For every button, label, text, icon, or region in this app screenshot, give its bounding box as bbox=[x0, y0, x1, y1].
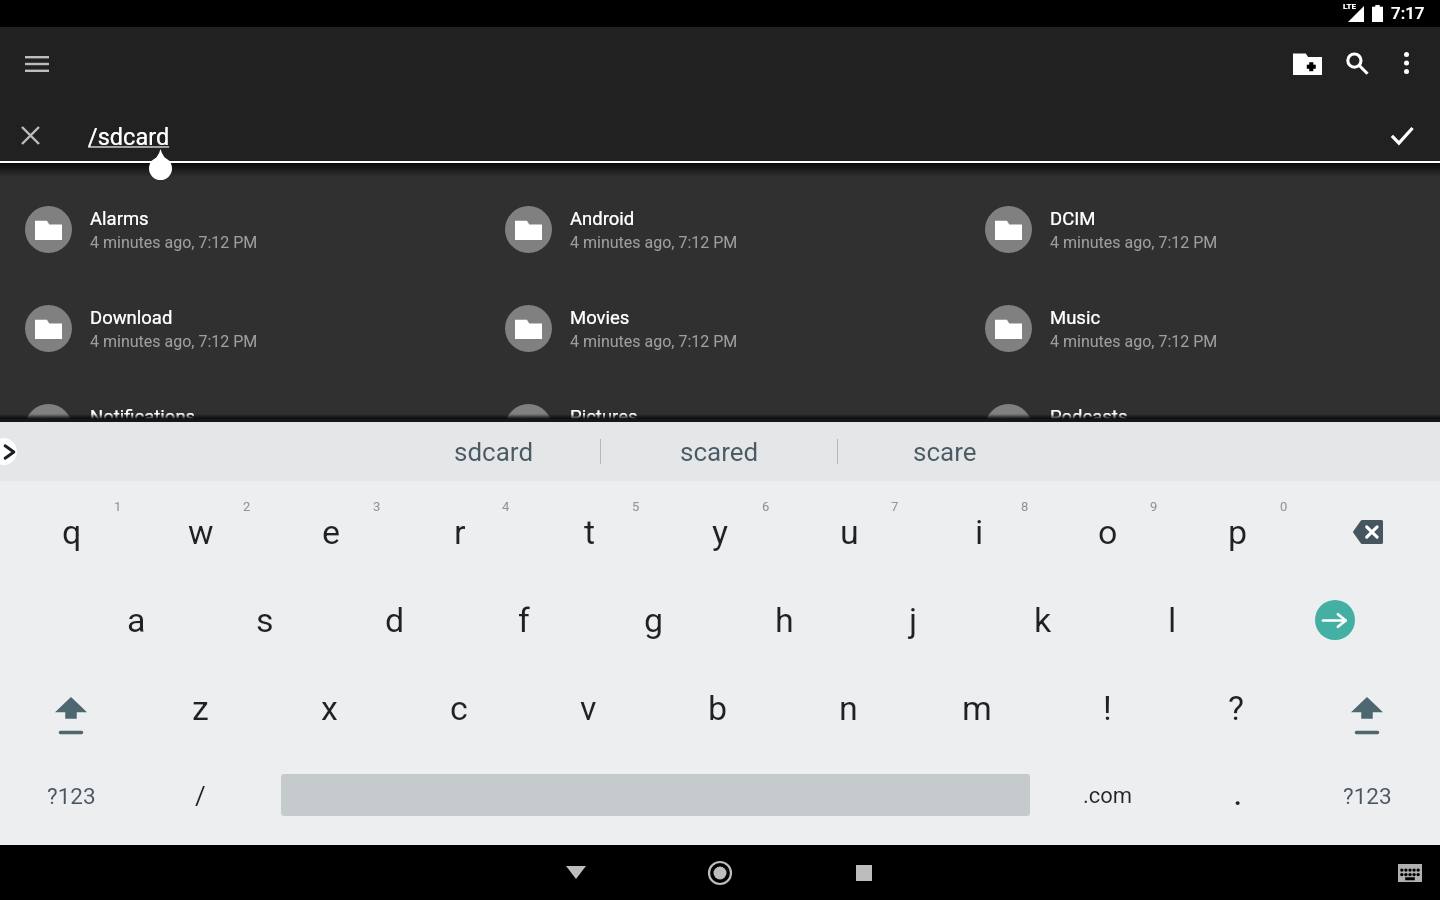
button[interactable]: Enter bbox=[1291, 576, 1379, 664]
button[interactable]: Music bbox=[960, 279, 1440, 378]
button[interactable]: Home bbox=[683, 845, 757, 900]
button[interactable]: ? bbox=[1176, 664, 1296, 752]
button[interactable]: j bbox=[853, 576, 973, 664]
button[interactable]: New folder bbox=[1282, 39, 1332, 87]
button[interactable]: Podcasts bbox=[960, 378, 1440, 419]
staticText: b bbox=[708, 688, 728, 728]
button[interactable]: Navigation menu bbox=[13, 40, 61, 88]
button[interactable]: y bbox=[660, 488, 780, 576]
staticText: Download bbox=[90, 307, 173, 329]
button[interactable]: Android bbox=[480, 180, 960, 279]
staticText: Music bbox=[1050, 307, 1101, 329]
staticText: /sdcard bbox=[88, 123, 170, 151]
button[interactable]: b bbox=[658, 664, 778, 752]
button[interactable]: More options bbox=[1382, 39, 1430, 87]
button[interactable]: scared bbox=[601, 422, 837, 481]
button[interactable]: ?123 bbox=[16, 752, 126, 840]
button[interactable]: g bbox=[594, 576, 714, 664]
button[interactable]: Notifications bbox=[0, 378, 480, 419]
button[interactable]: Backspace bbox=[1313, 488, 1423, 576]
button[interactable]: Change keyboard bbox=[1386, 849, 1434, 897]
button[interactable]: k bbox=[983, 576, 1103, 664]
button[interactable]: .com bbox=[1053, 752, 1163, 840]
button[interactable]: u bbox=[789, 488, 909, 576]
staticText: q bbox=[62, 512, 82, 552]
button[interactable]: Recent apps bbox=[827, 845, 901, 900]
button[interactable]: ! bbox=[1047, 664, 1167, 752]
staticText: 4 minutes ago, 7:12 PM bbox=[90, 233, 258, 252]
button[interactable]: . bbox=[1183, 752, 1293, 840]
staticText: k bbox=[1034, 600, 1052, 640]
staticText: DCIM bbox=[1050, 208, 1096, 230]
button[interactable]: Show more suggestions bbox=[0, 438, 17, 465]
button[interactable]: o bbox=[1048, 488, 1168, 576]
button[interactable]: Shift bbox=[16, 671, 126, 759]
staticText: e bbox=[322, 512, 341, 552]
button[interactable]: f bbox=[464, 576, 584, 664]
staticText: 4 minutes ago, 7:12 PM bbox=[90, 332, 258, 351]
button[interactable]: n bbox=[788, 664, 908, 752]
button[interactable]: sdcard bbox=[388, 422, 600, 481]
staticText: 9 bbox=[1150, 499, 1158, 514]
staticText: Pictures bbox=[570, 406, 638, 419]
button[interactable]: i bbox=[919, 488, 1039, 576]
staticText: s bbox=[256, 600, 274, 640]
button[interactable]: / bbox=[145, 752, 255, 840]
button[interactable]: v bbox=[528, 664, 648, 752]
button[interactable]: scare bbox=[838, 422, 1051, 481]
staticText: w bbox=[188, 512, 214, 552]
staticText: j bbox=[909, 600, 918, 640]
staticText: 4 minutes ago, 7:12 PM bbox=[1050, 332, 1218, 351]
button[interactable]: s bbox=[205, 576, 325, 664]
button[interactable]: x bbox=[269, 664, 389, 752]
button[interactable]: DCIM bbox=[960, 180, 1440, 279]
button[interactable]: e bbox=[271, 488, 391, 576]
button[interactable]: ?123 bbox=[1312, 752, 1422, 840]
button[interactable]: a bbox=[76, 576, 196, 664]
staticText: scare bbox=[913, 437, 977, 467]
staticText: 0 bbox=[1280, 499, 1288, 514]
staticText: 4 minutes ago, 7:12 PM bbox=[570, 332, 738, 351]
button[interactable]: Confirm bbox=[1378, 111, 1426, 159]
staticText: h bbox=[775, 600, 794, 640]
button[interactable]: l bbox=[1112, 576, 1232, 664]
staticText: 2 bbox=[243, 499, 251, 514]
button[interactable]: Alarms bbox=[0, 180, 480, 279]
button[interactable]: w bbox=[141, 488, 261, 576]
staticText: Notifications bbox=[90, 406, 196, 419]
staticText: scared bbox=[680, 437, 759, 467]
staticText: a bbox=[127, 600, 146, 640]
button[interactable]: c bbox=[399, 664, 519, 752]
button[interactable]: Movies bbox=[480, 279, 960, 378]
button[interactable]: Shift bbox=[1312, 671, 1422, 759]
button[interactable]: Pictures bbox=[480, 378, 960, 419]
staticText: 7 bbox=[891, 499, 899, 514]
button[interactable]: Back bbox=[539, 845, 613, 900]
staticText: ! bbox=[1103, 688, 1112, 728]
staticText: z bbox=[192, 688, 209, 728]
button[interactable]: m bbox=[917, 664, 1037, 752]
button[interactable]: r bbox=[400, 488, 520, 576]
staticText: v bbox=[580, 688, 597, 728]
staticText: 4 minutes ago, 7:12 PM bbox=[1050, 233, 1218, 252]
button[interactable]: d bbox=[335, 576, 455, 664]
staticText: p bbox=[1228, 512, 1248, 552]
staticText: o bbox=[1098, 512, 1118, 552]
button[interactable]: q bbox=[12, 488, 132, 576]
button[interactable]: z bbox=[140, 664, 260, 752]
button[interactable]: Close bbox=[6, 111, 54, 159]
staticText: d bbox=[385, 600, 405, 640]
staticText: LTE bbox=[1343, 2, 1356, 11]
button[interactable]: Search bbox=[1332, 39, 1382, 87]
button[interactable]: h bbox=[724, 576, 844, 664]
button[interactable]: p bbox=[1178, 488, 1298, 576]
button[interactable]: Download bbox=[0, 279, 480, 378]
staticText: 3 bbox=[373, 499, 381, 514]
staticText: 1 bbox=[114, 499, 122, 514]
button[interactable]: t bbox=[530, 488, 650, 576]
staticText: 6 bbox=[762, 499, 770, 514]
staticText: r bbox=[454, 512, 466, 552]
staticText: Podcasts bbox=[1050, 406, 1128, 419]
staticText: 7:17 bbox=[1391, 3, 1425, 23]
